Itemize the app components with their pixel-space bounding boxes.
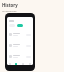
staticText: All workouts: [2, 9, 17, 12]
button[interactable]: [7, 51, 33, 62]
button[interactable]: [7, 40, 33, 51]
button[interactable]: Tab 2: [19, 62, 26, 65]
button[interactable]: Tab 1: [13, 62, 19, 65]
button[interactable]: [17, 24, 23, 27]
button[interactable]: [7, 29, 33, 40]
staticText: History: [2, 2, 18, 8]
button[interactable]: Tab 3: [26, 62, 33, 65]
button[interactable]: Tab 0: [7, 62, 13, 65]
